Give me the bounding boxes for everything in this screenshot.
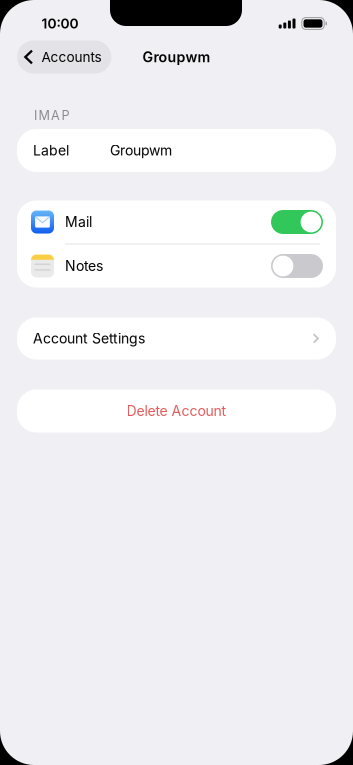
- staticText: Groupwm: [142, 48, 210, 65]
- button[interactable]: Mail: [17, 200, 336, 243]
- staticText: Mail: [65, 213, 92, 230]
- button[interactable]: Delete Account: [0, 389, 353, 432]
- staticText: IMAP: [34, 108, 69, 123]
- button[interactable]: Notes: [17, 244, 336, 287]
- staticText: Groupwm: [110, 142, 172, 159]
- staticText: 10:00: [41, 15, 78, 32]
- staticText: Label: [33, 142, 69, 159]
- staticText: Notes: [65, 257, 103, 274]
- staticText: Delete Account: [126, 402, 226, 419]
- button[interactable]: Account Settings: [0, 317, 353, 359]
- staticText: Account Settings: [33, 330, 145, 347]
- button[interactable]: Back to Accounts: [17, 40, 111, 73]
- staticText: Accounts: [41, 49, 101, 65]
